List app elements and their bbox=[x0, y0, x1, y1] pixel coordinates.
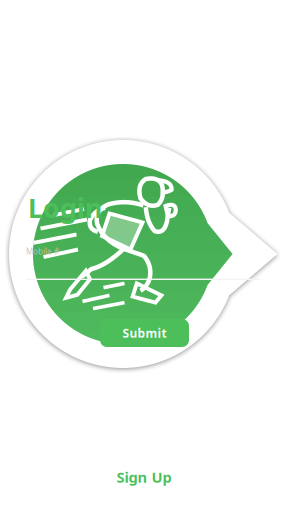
staticText: Submit bbox=[122, 325, 166, 341]
staticText: Mobile # bbox=[26, 246, 59, 257]
button[interactable]: Mobile number bbox=[26, 246, 260, 280]
button[interactable]: Submit bbox=[100, 319, 189, 347]
button[interactable]: Sign Up bbox=[0, 465, 288, 489]
staticText: Sign Up bbox=[116, 467, 171, 487]
staticText: Login bbox=[28, 190, 102, 225]
